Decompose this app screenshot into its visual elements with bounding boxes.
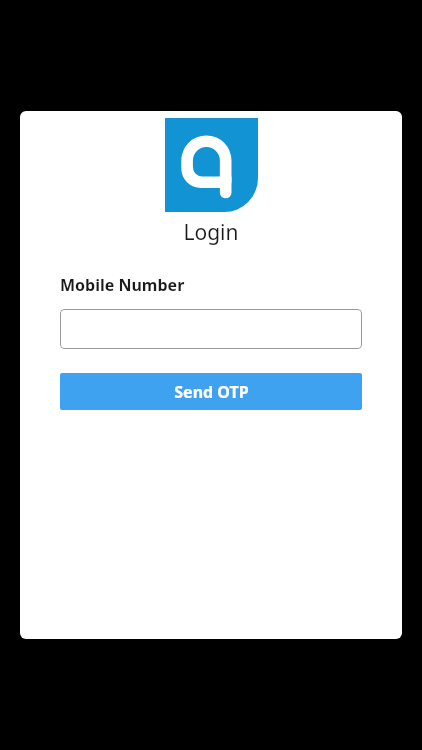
staticText: Mobile Number [60,274,185,296]
staticText: Send OTP [174,381,249,403]
button[interactable]: Mobile number input [60,309,362,349]
button[interactable]: Send OTP [60,373,362,410]
staticText: Login [183,218,239,247]
